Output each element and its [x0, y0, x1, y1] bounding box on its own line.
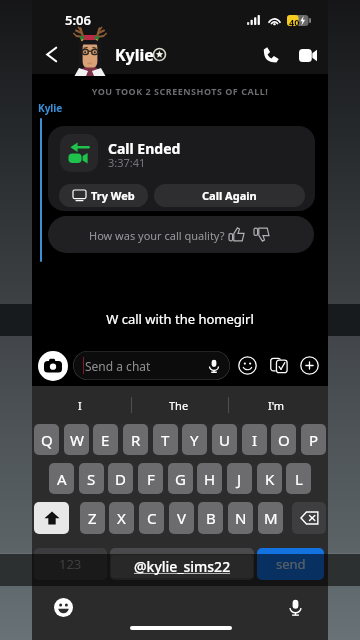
button[interactable]: I [242, 424, 267, 455]
button[interactable]: Voice call [257, 41, 285, 69]
button[interactable]: A [49, 463, 74, 494]
button[interactable]: Voice input [284, 596, 306, 618]
staticText: R [131, 430, 141, 450]
button[interactable]: K [257, 463, 282, 494]
button[interactable]: I'm [227, 386, 326, 424]
button[interactable]: Add [300, 356, 319, 375]
staticText: L [295, 469, 303, 489]
button[interactable]: M [258, 502, 283, 534]
staticText: S [87, 469, 96, 489]
button[interactable]: W [64, 424, 89, 455]
button[interactable]: Camera [38, 351, 68, 381]
staticText: Send a chat [85, 358, 151, 374]
button[interactable]: J [227, 463, 252, 494]
staticText: How was your call quality? [89, 228, 225, 243]
staticText: @kylie_sims22 [134, 557, 231, 576]
button[interactable]: Stickers [270, 356, 289, 375]
button[interactable]: B [198, 502, 223, 534]
button[interactable]: I [30, 386, 129, 424]
button[interactable]: 123 [34, 548, 107, 580]
staticText: X [117, 508, 126, 528]
staticText: U [219, 430, 230, 450]
staticText: K [265, 469, 275, 489]
staticText: Z [88, 508, 97, 528]
staticText: 40 [289, 16, 300, 27]
button[interactable]: send [257, 548, 324, 580]
button[interactable]: Send a chat [73, 351, 230, 380]
button[interactable]: L [286, 463, 311, 494]
button[interactable]: O [271, 424, 296, 455]
button[interactable]: Back [38, 41, 64, 67]
button[interactable]: C [139, 502, 164, 534]
staticText: A [57, 469, 67, 489]
button[interactable]: G [168, 463, 193, 494]
button[interactable]: V [169, 502, 194, 534]
button[interactable]: T [153, 424, 178, 455]
staticText: I'm [268, 398, 285, 413]
staticText: 5:06 [65, 11, 91, 29]
staticText: YOU TOOK 2 SCREENSHOTS OF CALL! [32, 85, 328, 97]
staticText: C [147, 508, 157, 528]
staticText: J [237, 469, 242, 489]
button[interactable]: Shift [34, 502, 69, 534]
staticText: 3:37:41 [108, 155, 146, 170]
staticText: M [264, 508, 278, 528]
staticText: D [115, 469, 126, 489]
button[interactable]: Y [182, 424, 207, 455]
button[interactable]: Backspace [292, 502, 326, 534]
button[interactable]: N [228, 502, 253, 534]
staticText: W [70, 430, 84, 450]
button[interactable]: R [123, 424, 148, 455]
button[interactable]: S [79, 463, 104, 494]
button[interactable]: P [301, 424, 326, 455]
staticText: N [235, 508, 247, 528]
button[interactable]: @kylie_sims22 [111, 555, 253, 578]
button[interactable]: X [109, 502, 134, 534]
button[interactable]: Video call [294, 41, 322, 69]
staticText: I [252, 430, 258, 450]
button[interactable]: space [110, 548, 254, 580]
button[interactable]: Z [80, 502, 105, 534]
staticText: O [278, 430, 290, 450]
button[interactable]: Q [34, 424, 59, 455]
staticText: H [204, 469, 216, 489]
button[interactable]: Emoji [238, 356, 257, 375]
button[interactable]: H [197, 463, 222, 494]
staticText: Y [190, 430, 199, 450]
button[interactable]: Emoji keyboard [52, 596, 74, 618]
staticText: 123 [59, 555, 82, 573]
staticText: Call Ended [108, 139, 181, 158]
staticText: Kylie [115, 44, 154, 66]
staticText: Try Web [91, 188, 135, 203]
button[interactable]: E [93, 424, 118, 455]
staticText: V [177, 508, 187, 528]
staticText: The [169, 398, 189, 413]
button[interactable]: Thumbs down [251, 224, 272, 245]
staticText: Kylie [38, 101, 63, 115]
button[interactable]: F [138, 463, 163, 494]
staticText: send [276, 555, 306, 573]
button[interactable]: The [129, 386, 228, 424]
staticText: I [78, 398, 82, 413]
button[interactable]: Try Web [59, 184, 148, 207]
staticText: F [147, 469, 155, 489]
staticText: Q [41, 430, 53, 450]
staticText: P [309, 430, 319, 450]
staticText: space [167, 557, 197, 572]
staticText: B [206, 508, 216, 528]
staticText: G [175, 469, 186, 489]
button[interactable]: D [108, 463, 133, 494]
staticText: T [161, 430, 170, 450]
staticText: W call with the homegirl [32, 310, 328, 328]
button[interactable]: Call Again [154, 184, 305, 207]
button[interactable]: U [212, 424, 237, 455]
staticText: E [101, 430, 110, 450]
button[interactable]: Thumbs up [226, 224, 247, 245]
staticText: Call Again [202, 188, 257, 203]
